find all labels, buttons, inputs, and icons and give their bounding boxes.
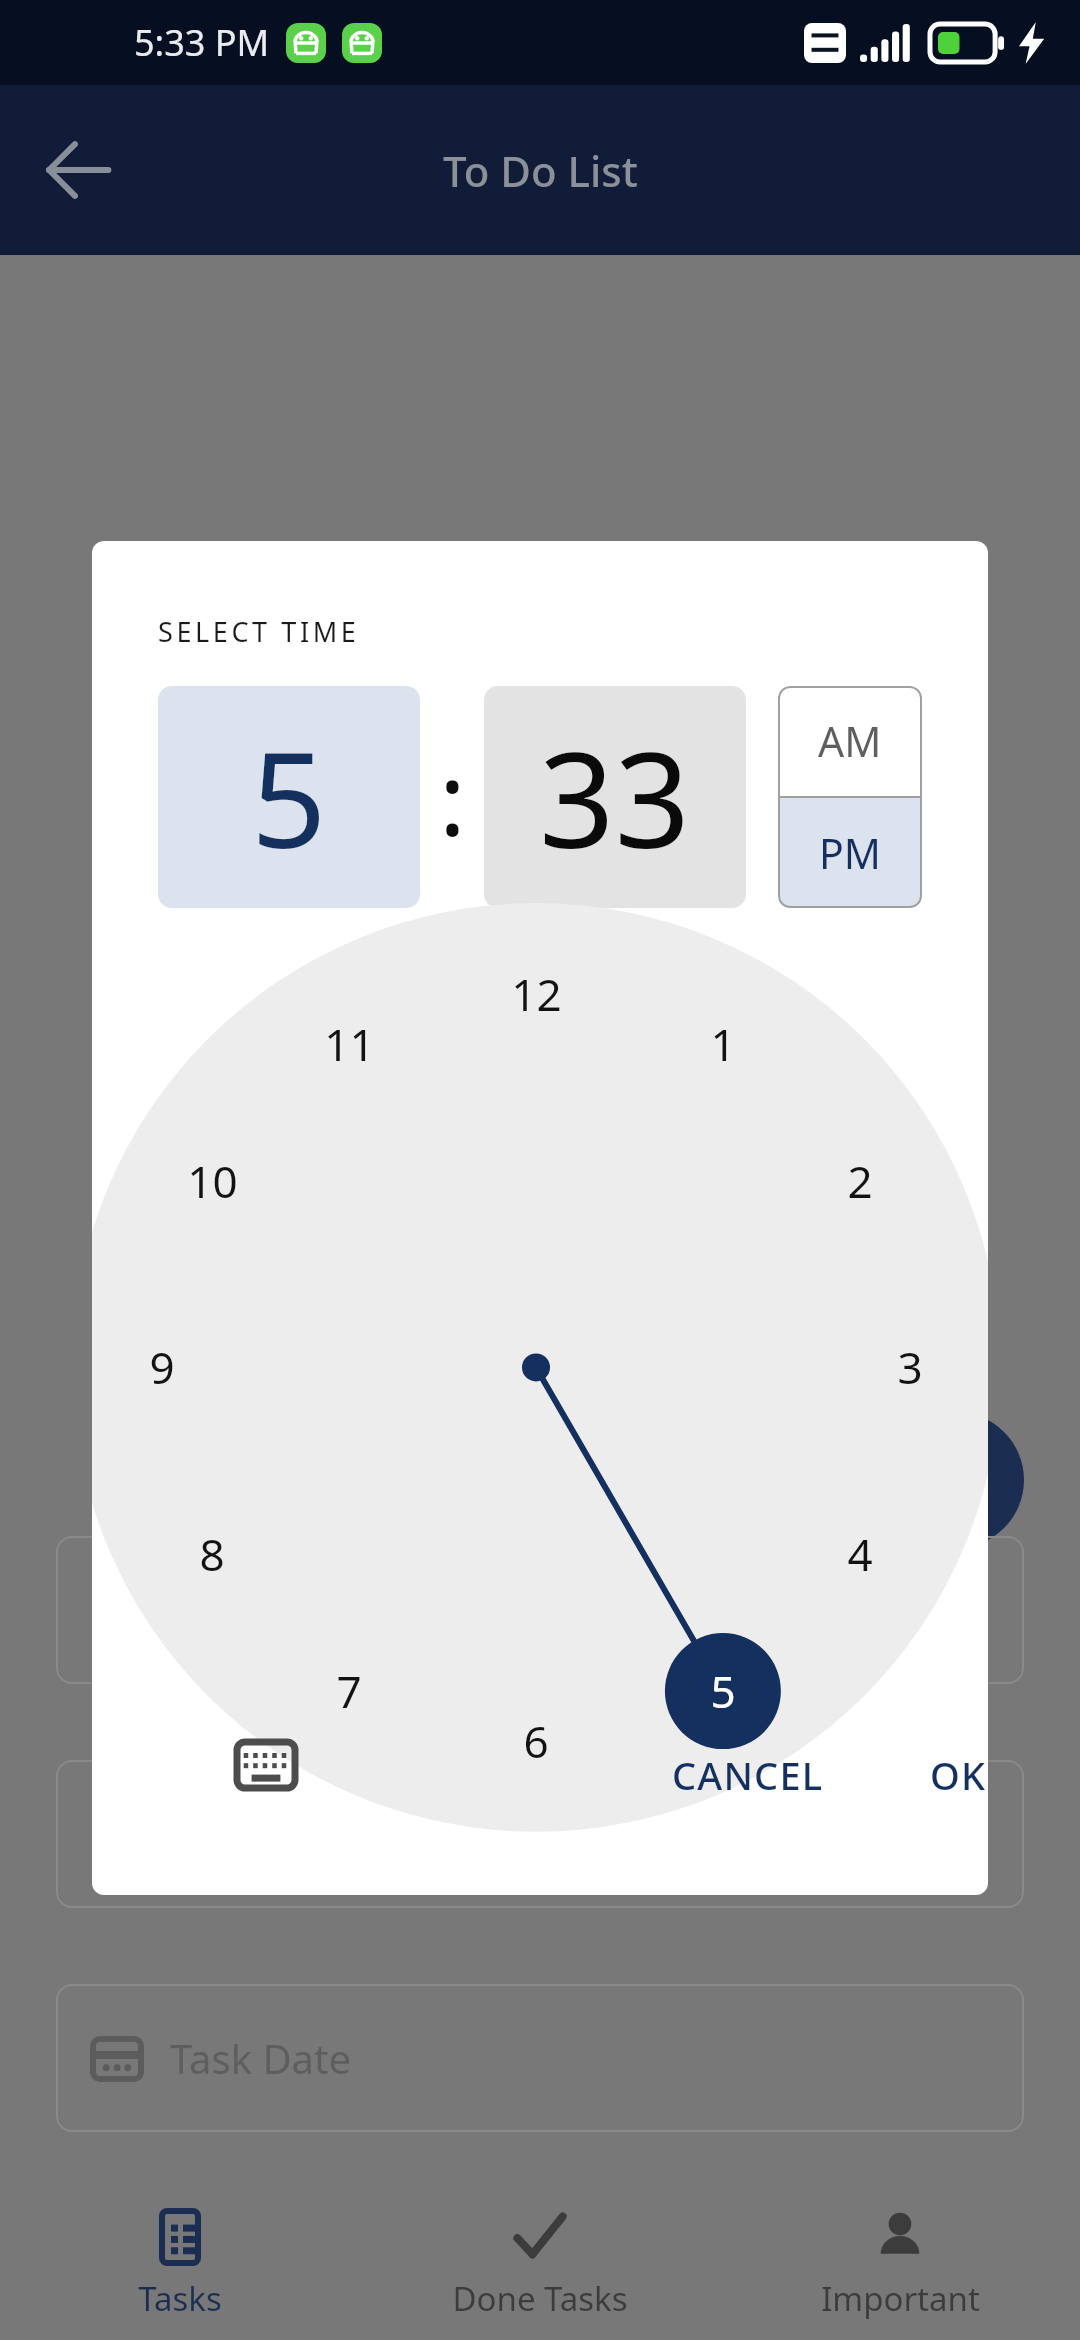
button[interactable]: Switch to text input mode [230,1729,302,1801]
staticText: CANCEL [672,1749,824,1801]
staticText: Task Date [170,2031,352,2085]
staticText: 7 [336,1661,362,1721]
button[interactable]: Add task [888,1412,1024,1548]
staticText: OK [930,1749,987,1801]
staticText: 1 [710,1014,736,1074]
staticText: 3 [897,1337,923,1397]
button[interactable]: 10 [168,1147,256,1215]
button[interactable]: OK [916,1733,988,1817]
staticText: Important [821,2276,980,2321]
button[interactable] [56,1760,1024,1908]
button[interactable]: 9 [118,1333,206,1401]
staticText: Tasks [138,2276,222,2321]
staticText: 5 [251,707,327,887]
staticText: 11 [324,1014,375,1074]
button[interactable]: CANCEL [658,1733,838,1817]
staticText: PM [819,825,881,881]
staticText: To Do List [443,142,638,199]
staticText: 5 [710,1661,736,1721]
button[interactable] [56,1536,1024,1684]
button[interactable]: Important [720,2190,1080,2340]
button[interactable]: 3 [866,1333,954,1401]
button[interactable]: 1 [679,1010,767,1078]
button[interactable]: AM [778,686,922,796]
staticText: 10 [187,1151,238,1211]
button[interactable]: 5 [158,686,420,908]
staticText: AM [818,713,882,769]
staticText: 33 [539,707,691,887]
staticText: 12 [511,964,562,1024]
button[interactable]: 4 [816,1520,904,1588]
staticText: 8 [199,1524,225,1584]
button[interactable]: 11 [305,1010,393,1078]
button[interactable]: Back [40,132,116,208]
button[interactable]: 33 [484,686,746,908]
staticText: 9 [149,1337,175,1397]
staticText: 2 [847,1151,873,1211]
button[interactable]: 12 [492,960,580,1028]
staticText: 6 [523,1711,549,1771]
staticText: Done Tasks [452,2276,628,2321]
button[interactable]: PM [778,798,922,908]
button[interactable]: 8 [168,1520,256,1588]
button[interactable]: Done Tasks [360,2190,720,2340]
button[interactable]: Tasks [0,2190,360,2340]
button[interactable]: Task Date [56,1984,1024,2132]
staticText: SELECT TIME [158,613,360,650]
button[interactable]: 2 [816,1147,904,1215]
staticText: 4 [847,1524,873,1584]
staticText: 5:33 PM [134,18,270,67]
staticText: : [439,729,466,865]
button[interactable]: 5 [679,1657,767,1725]
button[interactable]: 6 [492,1707,580,1775]
button[interactable]: 7 [305,1657,393,1725]
